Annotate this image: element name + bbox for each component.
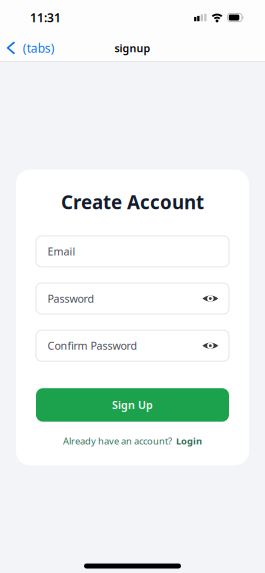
button[interactable]: Already have an account? bbox=[36, 434, 229, 447]
staticText: Email bbox=[47, 244, 75, 258]
staticText: Login bbox=[176, 435, 202, 447]
button[interactable]: Sign Up bbox=[36, 388, 229, 422]
staticText: 11:31 bbox=[30, 9, 61, 25]
staticText: Confirm Password bbox=[47, 339, 137, 353]
staticText: Sign Up bbox=[112, 398, 153, 412]
staticText: (tabs) bbox=[23, 40, 55, 56]
staticText: signup bbox=[114, 41, 150, 55]
staticText: Already have an account? bbox=[63, 435, 172, 447]
staticText: Create Account bbox=[61, 190, 204, 214]
staticText: Password bbox=[47, 291, 94, 306]
button[interactable]: (tabs) bbox=[0, 35, 61, 61]
